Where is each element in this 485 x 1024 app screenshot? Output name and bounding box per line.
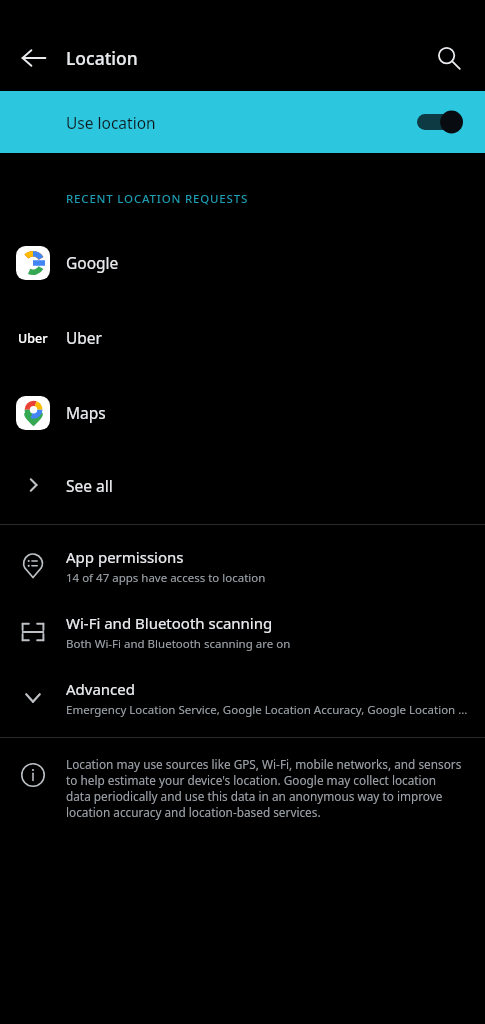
staticText: Uber bbox=[66, 327, 103, 348]
staticText: See all bbox=[66, 475, 113, 496]
staticText: Both Wi-Fi and Bluetooth scanning are on bbox=[66, 636, 291, 652]
staticText: Wi-Fi and Bluetooth scanning bbox=[66, 613, 273, 633]
staticText: App permissions bbox=[66, 547, 184, 567]
button[interactable]: Advanced bbox=[0, 665, 485, 731]
staticText: Maps bbox=[66, 402, 106, 423]
button[interactable]: See all bbox=[0, 450, 485, 520]
staticText: Use location bbox=[66, 112, 156, 133]
button[interactable]: App permissions bbox=[0, 533, 485, 599]
staticText: RECENT LOCATION REQUESTS bbox=[66, 191, 249, 207]
button[interactable]: Wi-Fi and Bluetooth scanning bbox=[0, 599, 485, 665]
button[interactable]: Back bbox=[10, 34, 58, 82]
staticText: Advanced bbox=[66, 679, 136, 699]
staticText: Google bbox=[66, 252, 119, 273]
staticText: 14 of 47 apps have access to location bbox=[66, 570, 266, 586]
button[interactable]: Uber bbox=[0, 300, 485, 375]
staticText: Location may use sources like GPS, Wi-Fi… bbox=[66, 756, 463, 820]
button[interactable]: Use location bbox=[0, 91, 485, 153]
staticText: Emergency Location Service, Google Locat… bbox=[66, 702, 471, 718]
button[interactable]: Maps bbox=[0, 375, 485, 450]
button[interactable]: Search bbox=[425, 34, 473, 82]
button[interactable]: Google bbox=[0, 225, 485, 300]
staticText: Location bbox=[66, 46, 138, 70]
staticText: Uber bbox=[18, 330, 48, 347]
